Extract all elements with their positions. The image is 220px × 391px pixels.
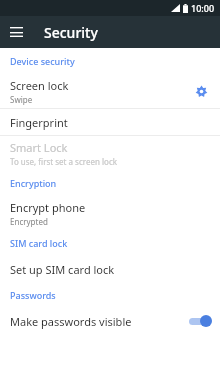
staticText: Swipe: [10, 94, 33, 105]
button[interactable]: Make passwords visible: [0, 308, 220, 334]
staticText: Encryption: [10, 177, 57, 189]
staticText: Encrypt phone: [10, 200, 86, 215]
button[interactable]: Screen lock settings: [190, 80, 212, 102]
staticText: 10:00: [191, 2, 215, 14]
staticText: Make passwords visible: [10, 314, 132, 329]
button[interactable]: Open navigation menu: [0, 16, 32, 48]
staticText: Screen lock: [10, 78, 69, 93]
staticText: Encrypted: [10, 216, 48, 227]
button[interactable]: Fingerprint: [0, 109, 220, 135]
staticText: Passwords: [10, 289, 56, 301]
staticText: Smart Lock: [10, 140, 68, 155]
button[interactable]: Screen lock: [0, 74, 220, 108]
staticText: Fingerprint: [10, 115, 68, 130]
button[interactable]: Smart Lock: [0, 136, 220, 170]
button[interactable]: Make passwords visible toggle: [186, 311, 212, 331]
staticText: SIM card lock: [10, 237, 68, 249]
staticText: Device security: [10, 55, 75, 67]
button[interactable]: Set up SIM card lock: [0, 256, 220, 282]
staticText: Security: [44, 23, 98, 42]
button[interactable]: Encrypt phone: [0, 196, 220, 230]
staticText: Set up SIM card lock: [10, 262, 115, 277]
staticText: To use, first set a screen lock: [10, 156, 117, 167]
